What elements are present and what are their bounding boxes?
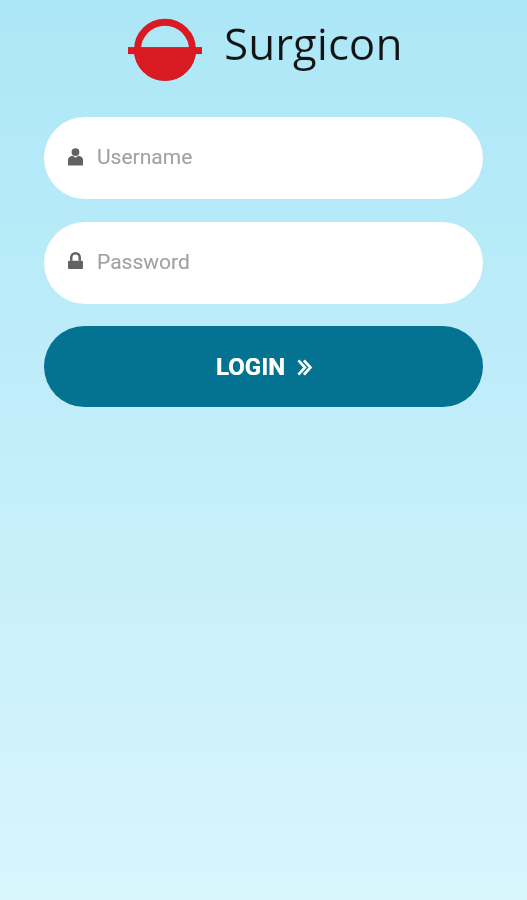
staticText: LOGIN bbox=[216, 353, 286, 381]
button[interactable]: Password bbox=[44, 222, 483, 304]
staticText: Surgicon bbox=[224, 13, 403, 73]
button[interactable]: Login bbox=[44, 326, 483, 407]
staticText: Username bbox=[97, 145, 193, 170]
button[interactable]: Username bbox=[44, 117, 483, 199]
staticText: Password bbox=[97, 250, 190, 275]
